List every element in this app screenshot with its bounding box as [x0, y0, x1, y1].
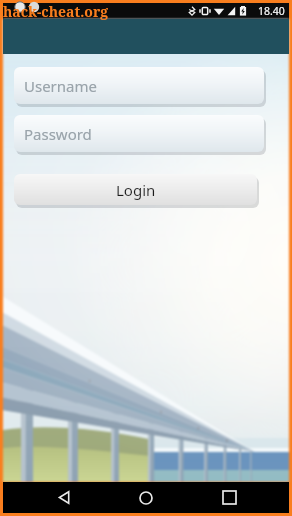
button[interactable]: Recent apps [207, 482, 251, 513]
staticText: Password [24, 124, 92, 144]
button[interactable]: Username [14, 67, 264, 104]
staticText: Username [24, 76, 97, 96]
button[interactable]: Login [14, 174, 257, 205]
button[interactable]: Password [14, 115, 264, 152]
staticText: Login [116, 180, 156, 200]
staticText: 18.40 [258, 4, 285, 18]
staticText: hack-cheat.org [3, 2, 109, 21]
button[interactable]: Home [124, 482, 168, 513]
button[interactable]: Back [42, 482, 86, 513]
